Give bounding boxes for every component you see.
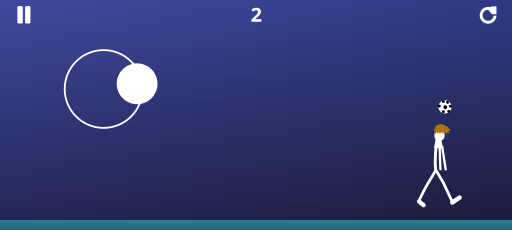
button[interactable]: Restart xyxy=(473,0,503,30)
staticText: 2 xyxy=(250,1,261,27)
button[interactable]: Pause xyxy=(8,0,40,30)
